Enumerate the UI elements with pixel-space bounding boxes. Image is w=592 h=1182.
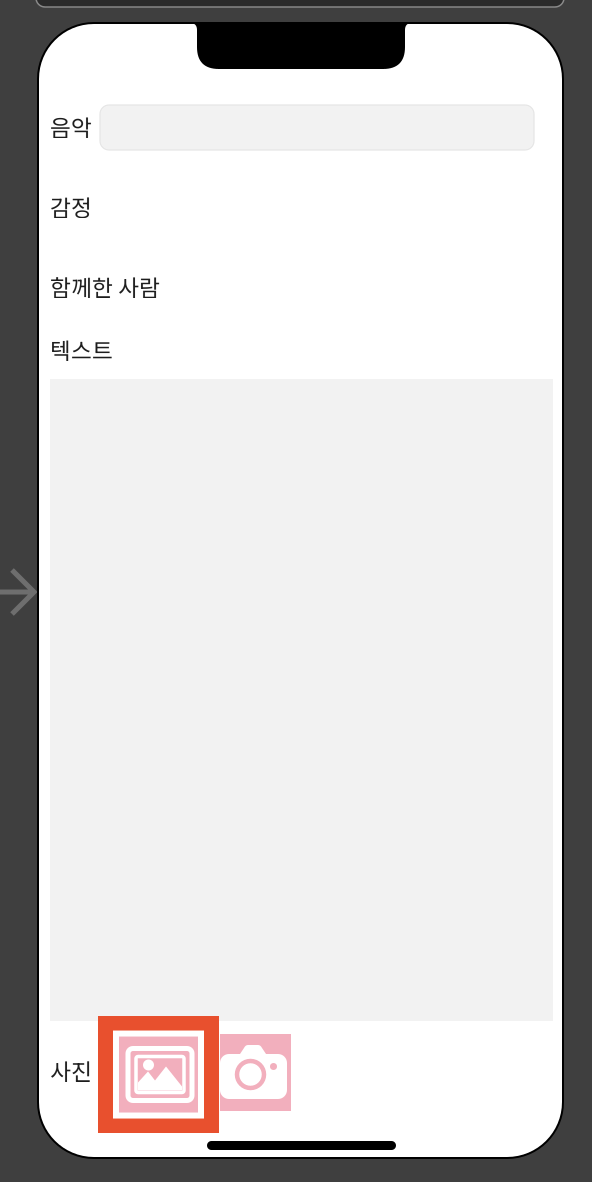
- button[interactable]: 감정: [50, 190, 92, 223]
- staticText: 텍스트: [50, 333, 113, 366]
- staticText: 함께한 사람: [50, 270, 160, 303]
- button[interactable]: 카메라: [220, 1034, 291, 1111]
- button[interactable]: 사진 보관함: [98, 1016, 219, 1133]
- button[interactable]: 텍스트: [50, 379, 553, 1021]
- button[interactable]: 함께한 사람: [50, 270, 160, 303]
- staticText: 감정: [50, 190, 92, 223]
- staticText: 사진: [50, 1054, 92, 1087]
- staticText: 음악: [50, 110, 92, 143]
